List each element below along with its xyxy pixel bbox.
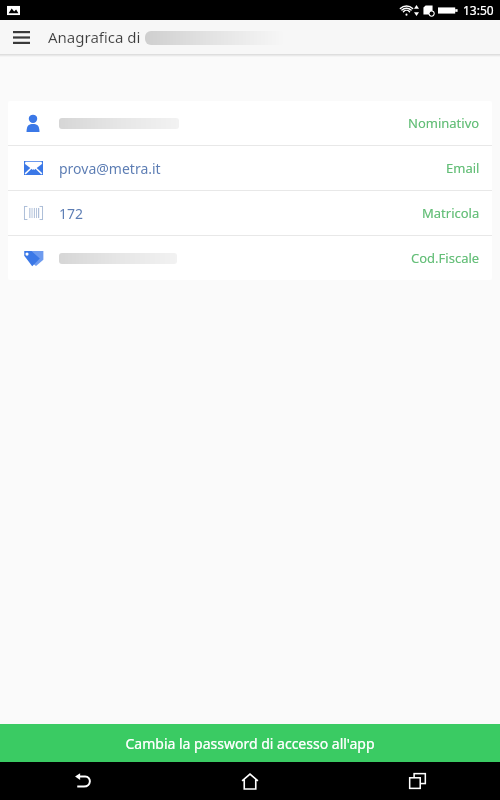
- staticText: Nominativo: [408, 114, 480, 132]
- button[interactable]: prova@metra.it: [8, 146, 492, 190]
- button[interactable]: 172: [8, 191, 492, 235]
- staticText: 13:50: [463, 2, 494, 18]
- staticText: Anagrafica di: [48, 27, 145, 47]
- button[interactable]: Cod.Fiscale: [8, 236, 492, 280]
- button[interactable]: Cambia la password di accesso all'app: [0, 724, 500, 762]
- button[interactable]: Nominativo: [8, 101, 492, 145]
- button[interactable]: Menu: [4, 20, 38, 54]
- button[interactable]: Recent apps: [393, 762, 441, 800]
- button[interactable]: Back: [59, 762, 107, 800]
- staticText: prova@metra.it: [59, 159, 161, 178]
- staticText: Cambia la password di accesso all'app: [125, 734, 375, 753]
- staticText: Cod.Fiscale: [411, 249, 480, 267]
- staticText: Matricola: [422, 204, 480, 222]
- staticText: 172: [59, 204, 84, 223]
- staticText: Email: [446, 159, 480, 177]
- button[interactable]: Home: [226, 762, 274, 800]
